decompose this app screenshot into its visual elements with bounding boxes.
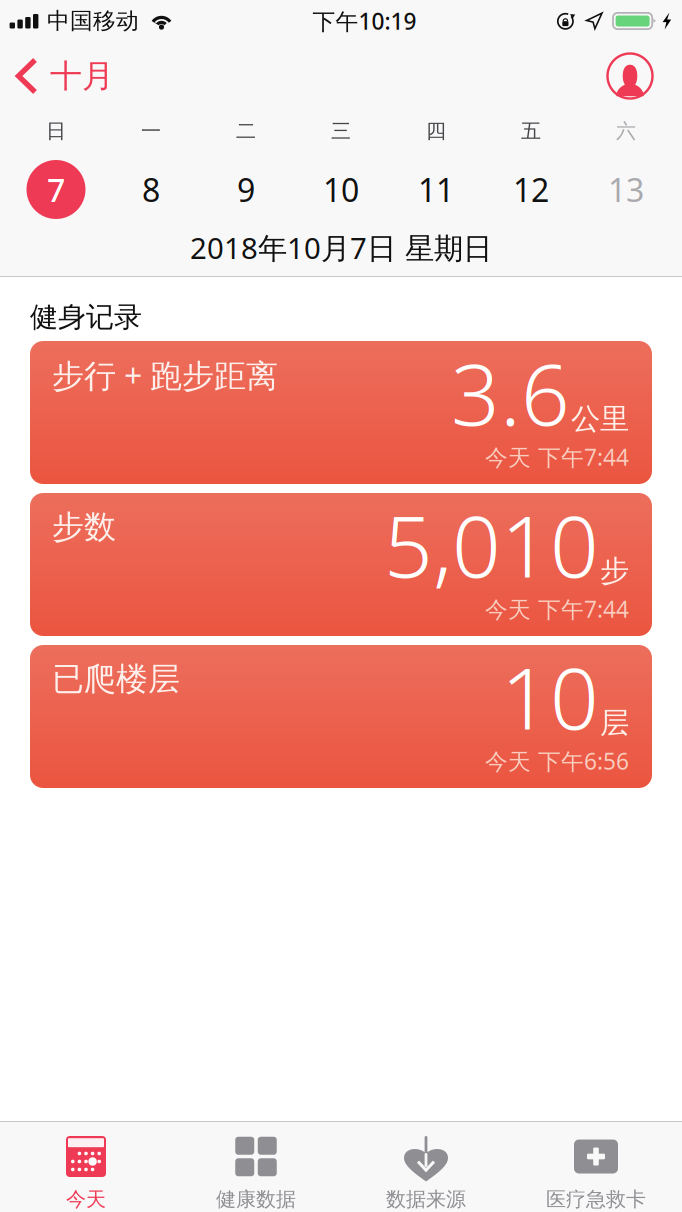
staticText: 日 — [46, 119, 66, 143]
staticText: 四 — [426, 119, 446, 143]
staticText: 数据来源 — [386, 1187, 466, 1212]
button[interactable]: 医疗急救卡 — [511, 1136, 681, 1212]
staticText: 六 — [616, 119, 636, 143]
staticText: 今天 — [66, 1187, 106, 1212]
staticText: 二 — [236, 119, 256, 143]
staticText: 3.6 — [451, 336, 570, 449]
staticText: 健身记录 — [30, 300, 142, 334]
staticText: 10 — [501, 640, 599, 753]
staticText: 五 — [521, 119, 541, 143]
staticText: 医疗急救卡 — [546, 1187, 646, 1212]
button[interactable]: 数据来源 — [341, 1136, 511, 1212]
button[interactable]: 已爬楼层 — [30, 645, 652, 788]
staticText: 已爬楼层 — [52, 659, 180, 699]
button[interactable]: 步行 + 跑步距离 — [30, 341, 652, 484]
staticText: 2018年10月7日 星期日 — [190, 228, 492, 267]
staticText: 11 — [418, 168, 454, 211]
staticText: 5,010 — [384, 488, 599, 601]
staticText: 一 — [141, 119, 161, 143]
staticText: 今天 下午6:56 — [485, 746, 629, 776]
staticText: 十月 — [50, 56, 114, 96]
staticText: 三 — [331, 119, 351, 143]
staticText: 步 — [600, 553, 629, 589]
button[interactable]: 四 — [388, 110, 483, 219]
staticText: 层 — [600, 705, 629, 741]
staticText: 7 — [47, 168, 65, 211]
staticText: 步行 + 跑步距离 — [52, 354, 278, 396]
staticText: 10 — [323, 168, 359, 211]
button[interactable]: 一 — [103, 110, 198, 219]
button[interactable]: 今天 — [1, 1136, 171, 1212]
button[interactable]: 二 — [198, 110, 293, 219]
button[interactable]: 个人资料 — [607, 45, 682, 107]
staticText: 13 — [608, 168, 644, 211]
button[interactable]: 五 — [483, 110, 578, 219]
staticText: 中国移动 — [47, 7, 139, 35]
staticText: 9 — [237, 168, 255, 211]
staticText: 今天 下午7:44 — [485, 442, 629, 472]
staticText: 步数 — [52, 507, 116, 547]
button[interactable]: 三 — [293, 110, 388, 219]
button[interactable]: 六 — [578, 110, 673, 219]
staticText: 健康数据 — [216, 1187, 296, 1212]
button[interactable]: 步数 — [30, 493, 652, 636]
staticText: 今天 下午7:44 — [485, 594, 629, 624]
button[interactable]: 健康数据 — [171, 1136, 341, 1212]
button[interactable]: 日 — [8, 110, 103, 219]
staticText: 公里 — [571, 401, 629, 437]
staticText: 12 — [513, 168, 549, 211]
staticText: 8 — [142, 168, 160, 211]
button[interactable]: 十月 — [0, 45, 126, 107]
staticText: 下午10:19 — [312, 6, 416, 36]
